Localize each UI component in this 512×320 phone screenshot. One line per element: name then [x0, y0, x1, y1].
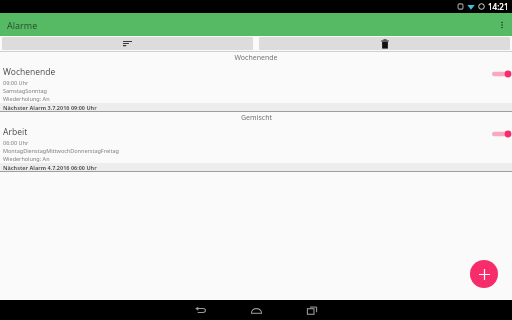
staticText: Wochenende	[234, 53, 278, 63]
button[interactable]: Weitere Optionen	[492, 13, 512, 36]
button[interactable]: Startbildschirm	[228, 300, 284, 320]
button[interactable]: Alarm aktivieren	[492, 69, 512, 79]
button[interactable]: Alarm aktivieren	[492, 129, 512, 139]
button[interactable]: Löschen	[259, 37, 510, 50]
staticText: 06:00 Uhr	[3, 139, 29, 146]
staticText: 14:21	[488, 1, 509, 12]
staticText: Wiederholung: An	[3, 155, 50, 162]
staticText: Arbeit	[3, 126, 28, 138]
staticText: SamstagSonntag	[3, 87, 47, 94]
staticText: 09:00 Uhr	[3, 79, 29, 86]
staticText: MontagDienstagMittwochDonnerstagFreitag	[3, 147, 119, 154]
button[interactable]: Wochenende	[0, 64, 512, 112]
staticText: Nächster Alarm 3.7.2016 09:00 Uhr	[3, 104, 97, 111]
button[interactable]: Sortieren	[2, 37, 253, 50]
button[interactable]: Alarm hinzufügen	[470, 260, 498, 288]
staticText: Wochenende	[3, 66, 56, 78]
staticText: Gemischt	[241, 113, 272, 123]
staticText: Wiederholung: An	[3, 95, 50, 102]
button[interactable]: Arbeit	[0, 124, 512, 172]
staticText: Alarme	[7, 19, 38, 31]
button[interactable]: Zurück	[172, 300, 228, 320]
button[interactable]: Übersicht	[284, 300, 340, 320]
staticText: Nächster Alarm 4.7.2016 06:00 Uhr	[3, 164, 97, 171]
